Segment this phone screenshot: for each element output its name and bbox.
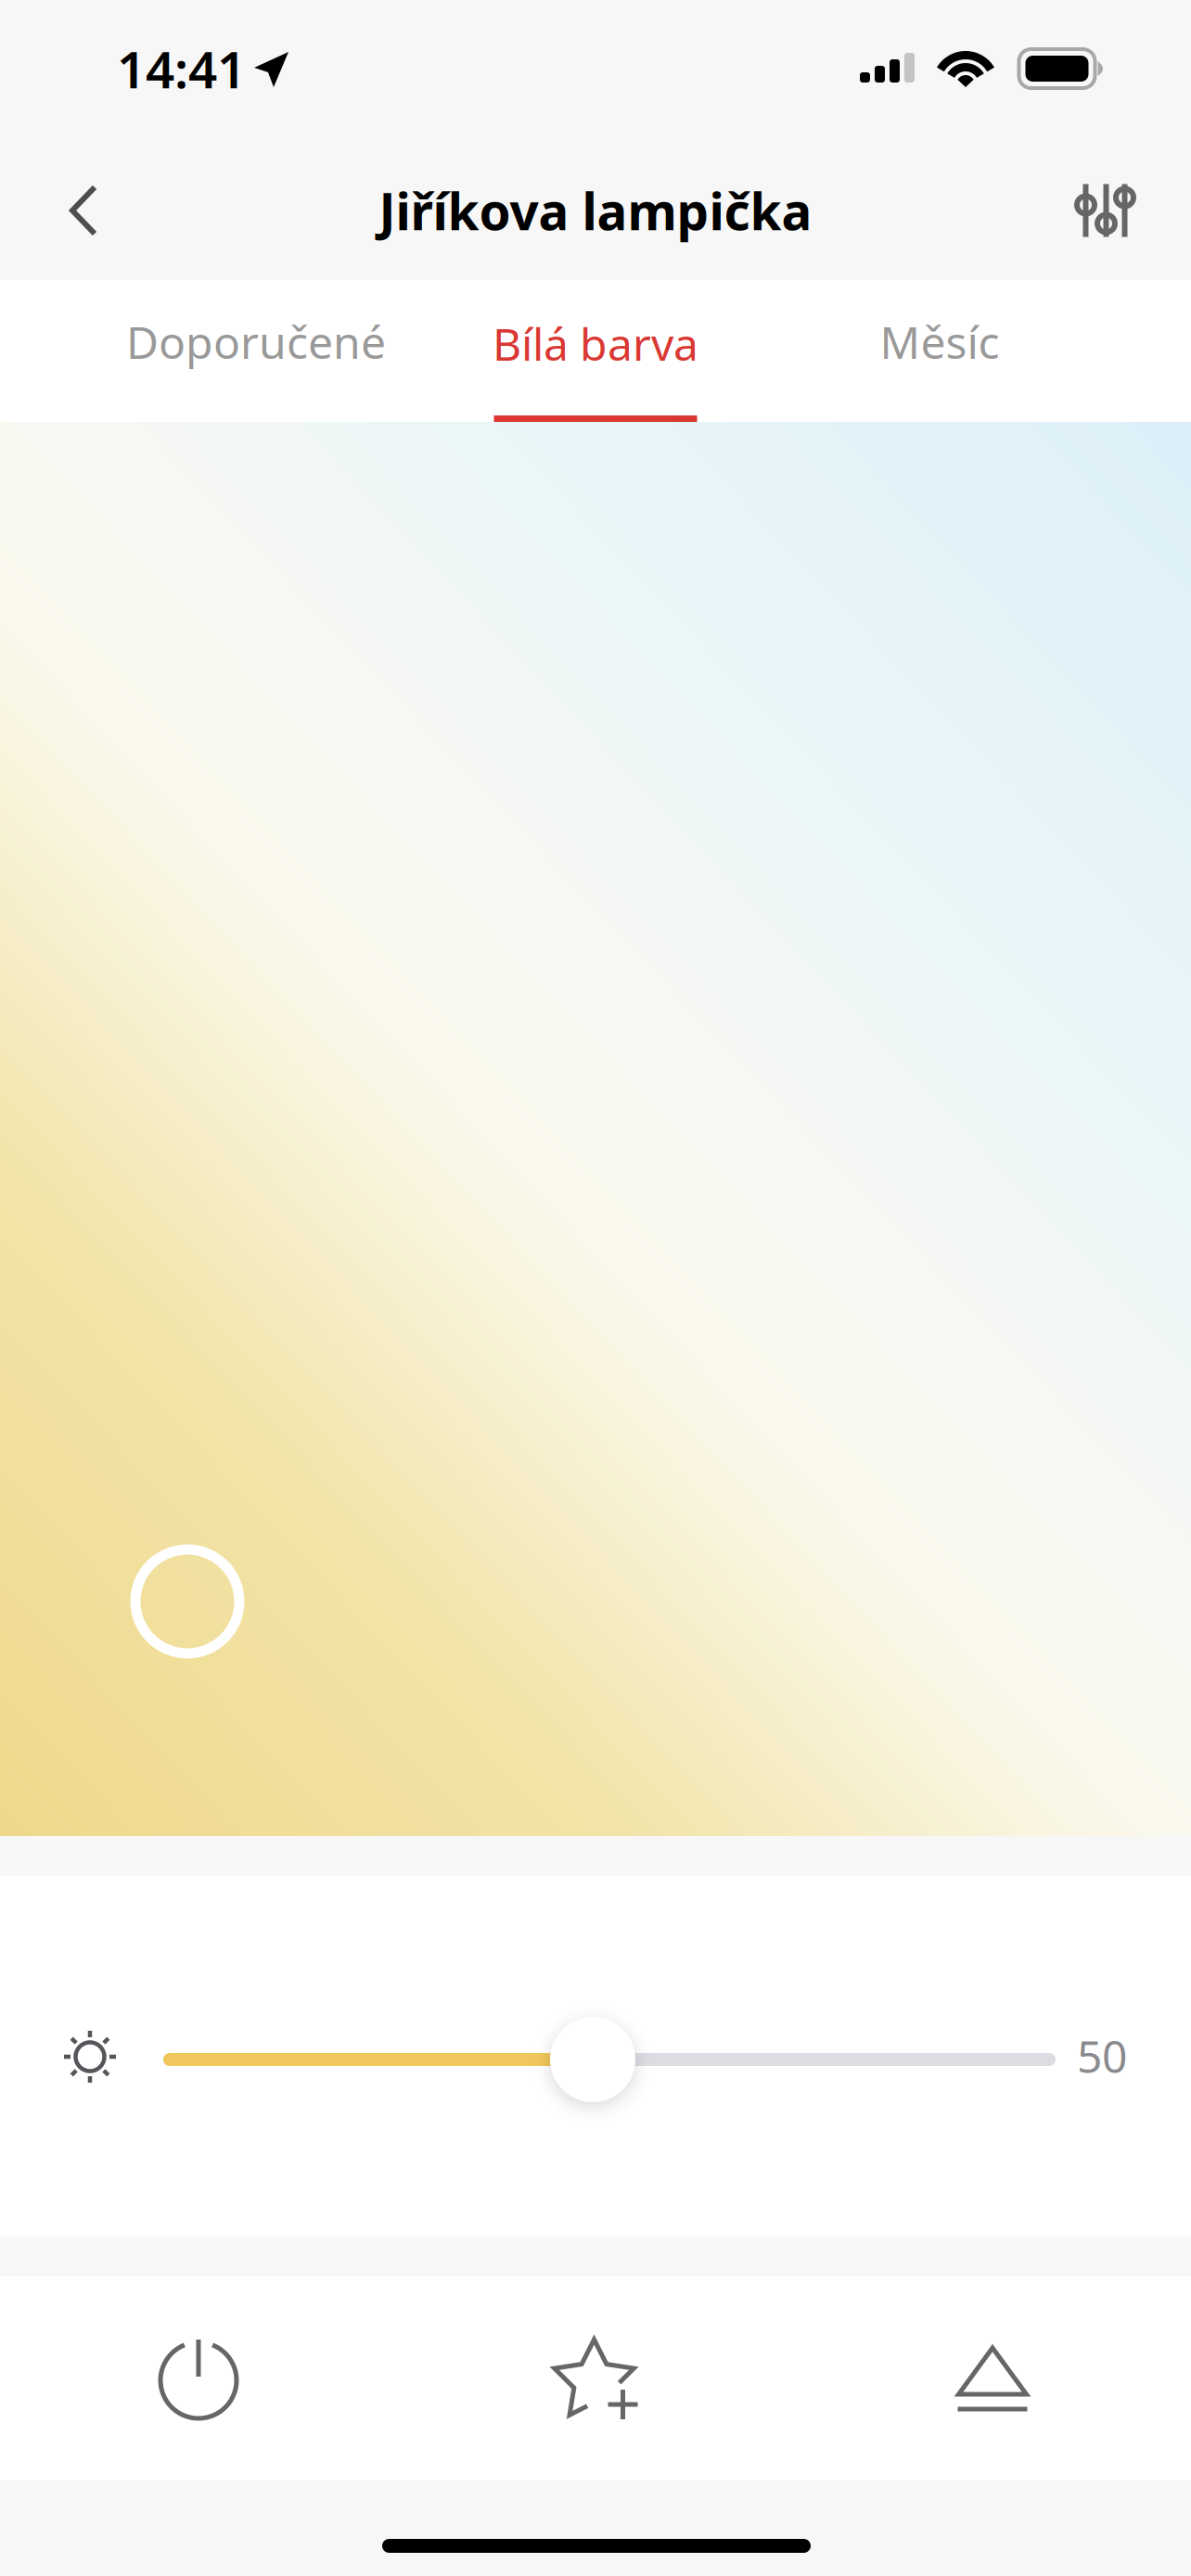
button[interactable]: Bílá barva [397,280,794,422]
staticText: Měsíc [880,312,999,371]
staticText: 50 [1077,2026,1127,2085]
staticText: 14:41 [117,35,246,102]
button[interactable]: Doporučené [0,280,397,422]
staticText: Jiříkova lampička [379,177,812,244]
button[interactable]: Settings [1048,141,1163,280]
staticText: Doporučené [126,312,386,371]
button[interactable]: Share [893,2276,1092,2480]
button[interactable]: Power [99,2276,298,2480]
staticText: Bílá barva [493,314,698,373]
button[interactable]: Back [26,141,141,280]
button[interactable]: Add to favourites [497,2276,696,2480]
button[interactable]: Měsíc [794,280,1191,422]
